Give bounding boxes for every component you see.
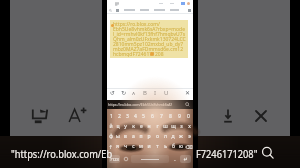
staticText: у — [124, 123, 127, 130]
staticText: п — [139, 133, 143, 140]
button[interactable]: е — [137, 121, 145, 131]
staticText: "https://ro.blox.com/Eb — [11, 146, 113, 161]
staticText: B — [143, 89, 147, 96]
staticText: б — [172, 143, 175, 150]
button[interactable]: м — [137, 141, 145, 152]
button[interactable]: 9 — [175, 111, 184, 121]
button[interactable]: ж — [177, 131, 185, 141]
staticText: е — [140, 123, 143, 130]
button[interactable]: у — [121, 121, 129, 131]
staticText: г — [156, 123, 159, 130]
button[interactable]: 6 — [148, 111, 157, 121]
button[interactable]: п — [137, 131, 145, 141]
button[interactable]: ю — [177, 141, 185, 152]
button[interactable]: Emoji — [122, 155, 129, 163]
button[interactable]: Format — [120, 89, 127, 96]
button[interactable]: б — [169, 141, 177, 152]
button[interactable]: с — [129, 141, 137, 152]
button[interactable]: Enter — [180, 155, 191, 163]
staticText: ↺ — [110, 89, 116, 96]
button[interactable]: 0 — [184, 111, 193, 121]
staticText: о — [156, 133, 159, 140]
staticText: 3 — [126, 113, 129, 120]
button[interactable]: т — [153, 141, 161, 152]
button[interactable]: в — [121, 131, 129, 141]
button[interactable]: Period — [171, 155, 178, 163]
staticText: ц — [116, 123, 120, 130]
staticText: щ — [171, 123, 176, 130]
staticText: 6 — [151, 113, 154, 120]
button[interactable]: Close — [251, 106, 271, 126]
button[interactable]: о — [153, 131, 161, 141]
button[interactable]: а — [129, 131, 137, 141]
staticText: 2 — [118, 113, 121, 120]
button[interactable]: ⌫ — [185, 141, 193, 152]
button[interactable]: Format — [109, 89, 116, 96]
button[interactable]: 3 — [123, 111, 131, 121]
button[interactable]: Format — [141, 89, 148, 96]
button[interactable]: к — [129, 121, 137, 131]
staticText: 0 — [187, 113, 190, 120]
staticText: н — [147, 123, 151, 130]
button[interactable]: и — [145, 141, 153, 152]
button[interactable]: щ — [169, 121, 177, 131]
staticText: 4 — [134, 113, 137, 120]
button[interactable]: Search — [109, 9, 112, 12]
staticText: р — [147, 133, 151, 140]
button[interactable]: Format — [152, 89, 159, 96]
staticText: м — [139, 143, 143, 150]
button[interactable]: Format — [163, 89, 170, 96]
staticText: I — [154, 89, 157, 96]
button[interactable]: Increase text size — [68, 106, 88, 126]
staticText: й — [109, 123, 113, 130]
button[interactable]: 4 — [131, 111, 139, 121]
button[interactable]: ш — [161, 121, 169, 131]
button[interactable]: Search — [260, 145, 276, 161]
button[interactable]: 1 — [107, 111, 115, 121]
button[interactable]: Numbers — [109, 155, 120, 163]
staticText: ✕ — [185, 89, 191, 96]
button[interactable]: я — [114, 141, 121, 152]
button[interactable]: й — [107, 121, 114, 131]
staticText: э — [188, 133, 191, 140]
button[interactable]: Space — [131, 155, 169, 163]
staticText: 9 — [178, 113, 181, 120]
staticText: https://ro.blox.com/Ebh5Ue8vhmk6sA?rbxp=… — [113, 21, 186, 58]
button[interactable]: Menu — [114, 1, 119, 6]
button[interactable]: 2 — [115, 111, 123, 121]
staticText: ф — [109, 133, 113, 140]
staticText: U — [164, 89, 169, 96]
button[interactable]: ч — [121, 141, 129, 152]
staticText: з — [180, 123, 183, 130]
staticText: ᴀ — [132, 89, 136, 96]
button[interactable]: Format — [184, 89, 191, 96]
button[interactable]: г — [153, 121, 161, 131]
button[interactable]: ф — [107, 131, 114, 141]
button[interactable]: х — [185, 121, 193, 131]
staticText: ч — [124, 143, 127, 150]
staticText: ↻ — [121, 89, 127, 96]
button[interactable]: Search — [184, 101, 191, 108]
button[interactable]: 7 — [157, 111, 166, 121]
button[interactable]: ↑ — [107, 141, 114, 152]
button[interactable]: Download — [218, 106, 238, 126]
button[interactable]: н — [145, 121, 153, 131]
button[interactable]: з — [177, 121, 185, 131]
button[interactable]: Format — [173, 89, 180, 96]
button[interactable]: р — [145, 131, 153, 141]
button[interactable]: д — [169, 131, 177, 141]
button[interactable]: л — [161, 131, 169, 141]
button[interactable]: ы — [114, 131, 121, 141]
button[interactable]: Format — [130, 89, 137, 96]
button[interactable]: ц — [114, 121, 121, 131]
staticText: с — [132, 143, 135, 150]
button[interactable]: Translate page — [30, 106, 50, 126]
staticText: 7 — [160, 113, 163, 120]
button[interactable]: 5 — [139, 111, 148, 121]
button[interactable]: э — [185, 131, 193, 141]
button[interactable]: ь — [161, 141, 169, 152]
button[interactable]: 8 — [166, 111, 175, 121]
staticText: ↵ — [183, 156, 188, 162]
staticText: и — [147, 143, 151, 150]
staticText: F7246171208" — [196, 146, 258, 161]
